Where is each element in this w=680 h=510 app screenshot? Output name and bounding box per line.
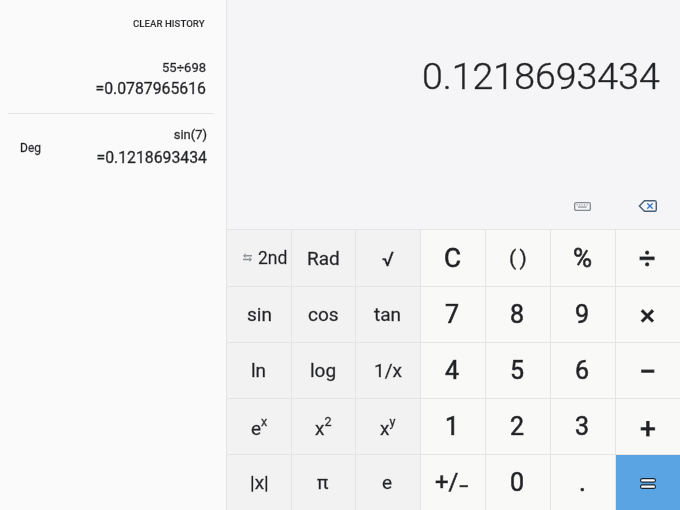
staticText: 8 [510, 300, 525, 329]
staticText: 2 [510, 412, 525, 441]
staticText: Deg [20, 141, 41, 155]
staticText: e [382, 471, 393, 493]
button[interactable]: 1 [420, 398, 485, 454]
staticText: CLEAR HISTORY [133, 18, 205, 29]
staticText: () [509, 246, 530, 271]
button[interactable]: () [485, 230, 550, 286]
button[interactable]: 7 [420, 286, 485, 342]
staticText: 1/x [374, 359, 402, 381]
staticText: sin(7) [0, 127, 207, 142]
staticText: =0.0787965616 [0, 79, 206, 98]
button[interactable]: 0 [485, 454, 550, 510]
button[interactable]: ex [227, 398, 291, 454]
staticText: 0 [510, 468, 525, 497]
button[interactable]: 5 [485, 342, 550, 398]
button[interactable]: Rad [291, 230, 355, 286]
staticText: CLEAR HISTORY [133, 18, 205, 29]
staticText: xy [380, 414, 396, 439]
staticText: . [579, 467, 586, 497]
staticText: ÷ [639, 242, 656, 276]
button[interactable]: Show keyboard [564, 188, 600, 224]
button[interactable]: 4 [420, 342, 485, 398]
staticText: C [444, 243, 461, 273]
button[interactable]: 2nd [227, 230, 291, 286]
button[interactable]: . [550, 454, 615, 510]
staticText: |x| [250, 471, 269, 493]
button[interactable]: e [355, 454, 420, 510]
button[interactable]: cos [291, 286, 355, 342]
staticText: tan [374, 303, 402, 325]
staticText: 9 [575, 300, 590, 329]
staticText: sin [247, 303, 272, 325]
staticText: =0.1218693434 [0, 148, 207, 167]
staticText: Rad [307, 247, 340, 269]
staticText: sin [247, 303, 272, 325]
staticText: √ [382, 247, 394, 270]
button[interactable]: log [291, 342, 355, 398]
button[interactable]: Backspace [629, 188, 665, 224]
button[interactable]: C [420, 230, 485, 286]
button[interactable]: 8 [485, 286, 550, 342]
button[interactable]: 3 [550, 398, 615, 454]
button[interactable]: % [550, 230, 615, 286]
staticText: 5 [510, 356, 525, 385]
button[interactable]: √ [355, 230, 420, 286]
staticText: 2nd [258, 248, 288, 269]
button[interactable]: Deg [0, 118, 226, 176]
staticText: 1 [445, 412, 460, 441]
staticText: |x| [250, 471, 269, 493]
staticText: 1 [445, 412, 460, 441]
staticText: 3 [575, 412, 590, 441]
button[interactable]: |x| [227, 454, 291, 510]
staticText: 9 [575, 300, 590, 329]
staticText: 6 [575, 356, 590, 385]
button[interactable]: ln [227, 342, 291, 398]
staticText: 0 [510, 468, 525, 497]
staticText: Deg [20, 141, 41, 155]
button[interactable]: tan [355, 286, 420, 342]
button[interactable]: + [615, 398, 680, 454]
staticText: e [382, 471, 393, 493]
button[interactable]: 55÷698 [0, 48, 226, 108]
staticText: 3 [575, 412, 590, 441]
button[interactable]: ÷ [615, 230, 680, 286]
staticText: +/− [435, 468, 470, 497]
staticText: 0.1218693434 [422, 54, 660, 98]
button[interactable]: × [615, 286, 680, 342]
button[interactable]: xy [355, 398, 420, 454]
staticText: + [640, 412, 656, 445]
button[interactable]: 1/x [355, 342, 420, 398]
staticText: 5 [510, 356, 525, 385]
staticText: cos [308, 303, 339, 325]
button[interactable]: π [291, 454, 355, 510]
button[interactable]: Equals [615, 454, 680, 510]
staticText: log [310, 359, 337, 381]
button[interactable]: CLEAR HISTORY [121, 11, 217, 36]
staticText: +/− [435, 468, 470, 497]
staticText: − [639, 354, 657, 389]
staticText: x2 [315, 414, 332, 439]
button[interactable]: 6 [550, 342, 615, 398]
staticText: () [509, 246, 530, 271]
staticText: % [573, 243, 593, 273]
staticText: ln [251, 359, 267, 381]
staticText: log [310, 359, 337, 381]
button[interactable]: − [615, 342, 680, 398]
button[interactable]: 2 [485, 398, 550, 454]
staticText: 2 [510, 412, 525, 441]
staticText: =0.0787965616 [0, 79, 206, 98]
staticText: + [640, 412, 656, 445]
staticText: 4 [445, 356, 460, 385]
button[interactable]: +/− [420, 454, 485, 510]
button[interactable]: sin [227, 286, 291, 342]
staticText: . [579, 467, 586, 497]
staticText: x2 [315, 414, 332, 439]
staticText: √ [382, 247, 394, 270]
staticText: 4 [445, 356, 460, 385]
staticText: 6 [575, 356, 590, 385]
staticText: ex [251, 414, 268, 439]
staticText: − [639, 354, 657, 389]
button[interactable]: x2 [291, 398, 355, 454]
staticText: 0.1218693434 [422, 54, 660, 98]
button[interactable]: 9 [550, 286, 615, 342]
